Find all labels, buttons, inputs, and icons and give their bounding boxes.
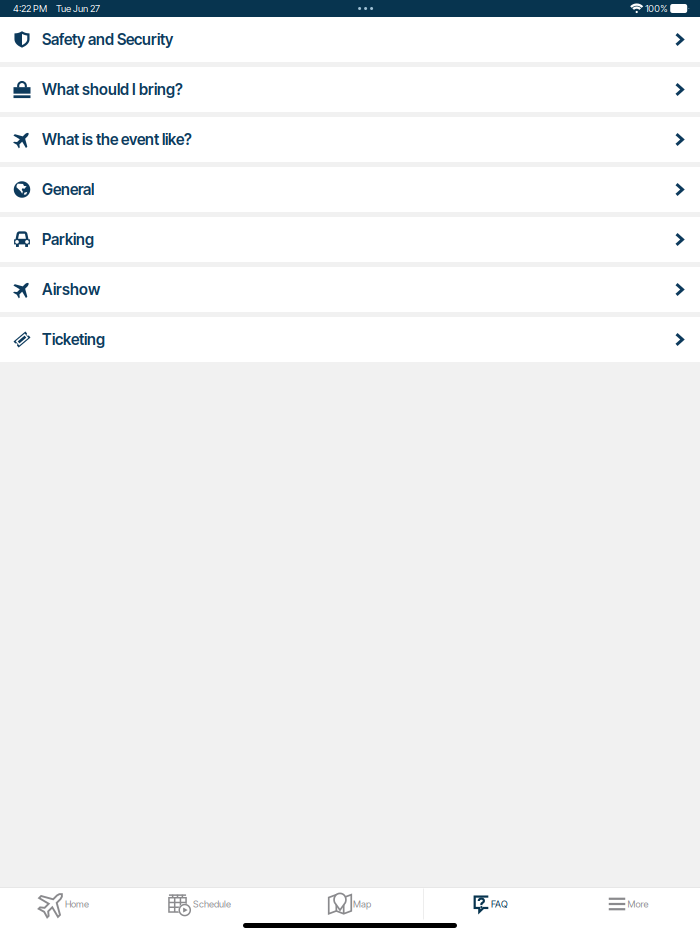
button[interactable]: Parking — [0, 217, 700, 262]
button[interactable]: Airshow — [0, 267, 700, 312]
staticText: Schedule — [193, 898, 231, 910]
staticText: More — [627, 898, 648, 910]
staticText: Airshow — [42, 280, 100, 299]
button[interactable]: Home — [0, 888, 140, 920]
staticText: General — [42, 180, 94, 199]
staticText: What should I bring? — [42, 80, 183, 99]
staticText: What is the event like? — [42, 130, 192, 149]
button[interactable]: FAQ — [420, 888, 560, 920]
button[interactable]: Schedule — [140, 888, 280, 920]
button[interactable]: Map — [280, 888, 420, 920]
staticText: 4:22 PM — [13, 3, 47, 14]
staticText: Parking — [42, 230, 94, 249]
button[interactable]: General — [0, 167, 700, 212]
staticText: FAQ — [491, 898, 508, 910]
staticText: Ticketing — [42, 330, 105, 349]
staticText: 100% — [645, 3, 667, 14]
staticText: Home — [65, 898, 89, 910]
staticText: Tue Jun 27 — [56, 3, 100, 14]
staticText: Map — [353, 898, 371, 910]
staticText: Safety and Security — [42, 30, 173, 49]
button[interactable]: More — [560, 888, 700, 920]
button[interactable]: What should I bring? — [0, 67, 700, 112]
button[interactable]: Ticketing — [0, 317, 700, 362]
button[interactable]: Safety and Security — [0, 17, 700, 62]
button[interactable]: What is the event like? — [0, 117, 700, 162]
